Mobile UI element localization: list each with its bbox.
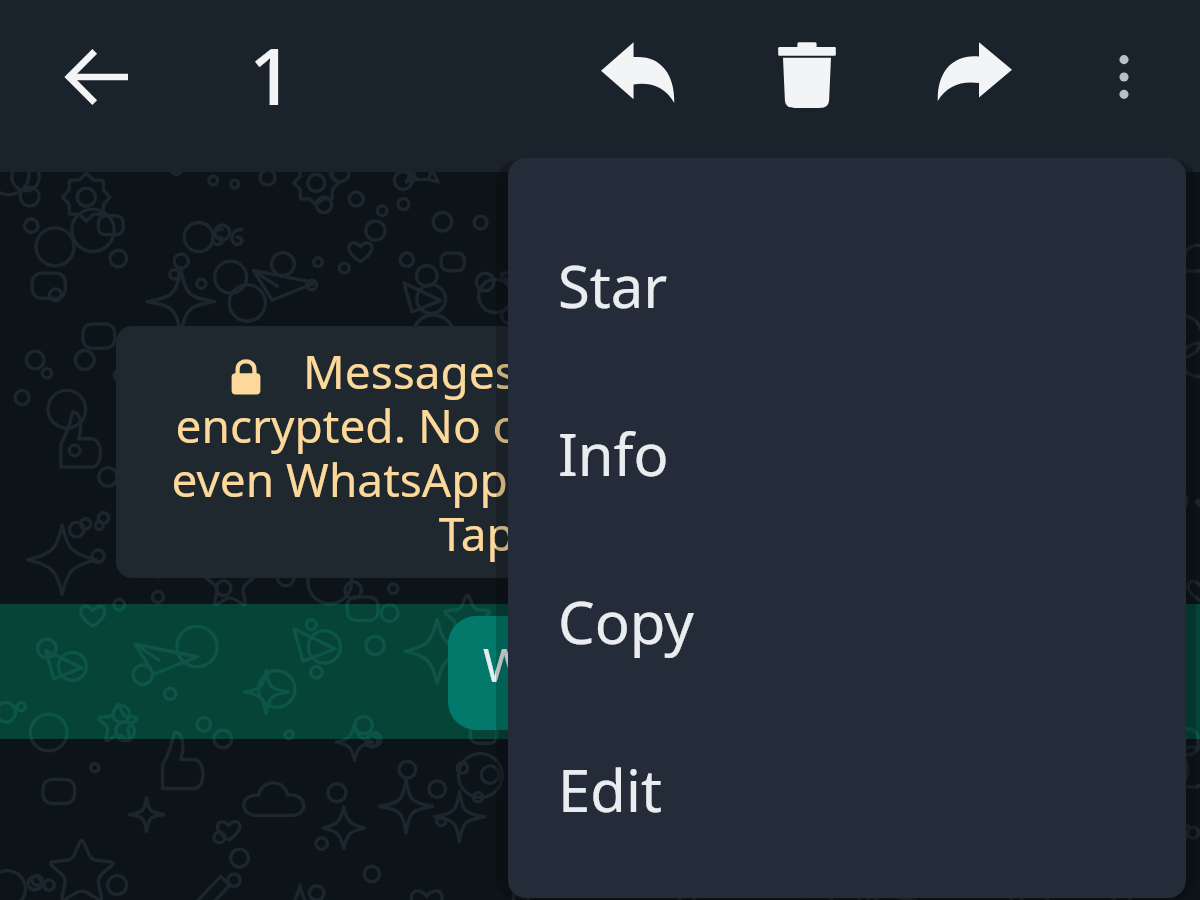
button[interactable]: More options — [1100, 46, 1148, 108]
staticText: Edit — [558, 750, 662, 829]
button[interactable]: Wow — [448, 616, 868, 730]
staticText: 1 — [249, 22, 294, 128]
button[interactable]: Messages and calls are end-to-end encryp… — [116, 326, 1156, 578]
staticText: Copy — [558, 582, 694, 661]
button[interactable]: Edit — [508, 734, 1186, 844]
staticText: Messages and calls are end-to-end encryp… — [116, 340, 1156, 565]
button[interactable]: Forward — [937, 41, 1012, 101]
staticText: Info — [558, 414, 669, 493]
button[interactable]: Back — [64, 45, 128, 109]
button[interactable]: Copy — [508, 566, 1186, 676]
button[interactable]: Delete — [777, 41, 837, 108]
staticText: Wow — [483, 633, 588, 696]
staticText: Star — [558, 246, 668, 325]
button[interactable]: Info — [508, 398, 1186, 508]
button[interactable]: Star — [508, 230, 1186, 340]
button[interactable]: Reply — [601, 41, 675, 103]
